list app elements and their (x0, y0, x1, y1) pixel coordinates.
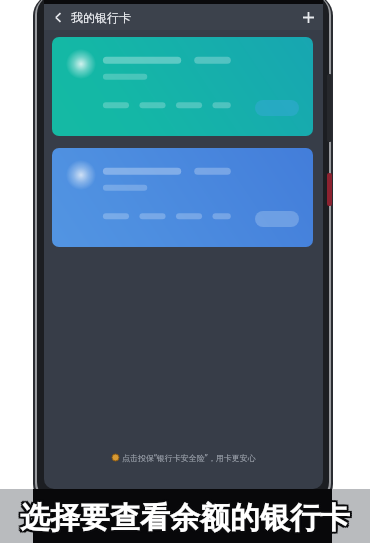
staticText: 选择要查看余额的银行卡 (18, 497, 348, 535)
button[interactable]: Back (47, 6, 69, 28)
other: Power (327, 173, 332, 206)
staticText: 选择要查看余额的银行卡 (22, 497, 352, 535)
button[interactable]: Card action (52, 148, 313, 247)
staticText: 选择要查看余额的银行卡 (18, 499, 348, 537)
button[interactable]: Card action (255, 100, 299, 116)
staticText: 选择要查看余额的银行卡 (22, 499, 352, 537)
button[interactable]: 点击投保“银行卡安全险”，用卡更安心 (44, 446, 323, 469)
staticText: 点击投保“银行卡安全险”，用卡更安心 (122, 452, 256, 463)
button[interactable]: Card action (255, 211, 299, 227)
staticText: 我的银行卡 (71, 10, 131, 25)
staticText: 选择要查看余额的银行卡 (20, 499, 350, 537)
button[interactable]: Card action (52, 37, 313, 136)
staticText: 选择要查看余额的银行卡 (22, 501, 352, 539)
staticText: 选择要查看余额的银行卡 (18, 501, 348, 539)
staticText: 选择要查看余额的银行卡 (20, 501, 350, 539)
button[interactable]: Add card (297, 6, 319, 28)
staticText: 选择要查看余额的银行卡 (20, 497, 350, 535)
